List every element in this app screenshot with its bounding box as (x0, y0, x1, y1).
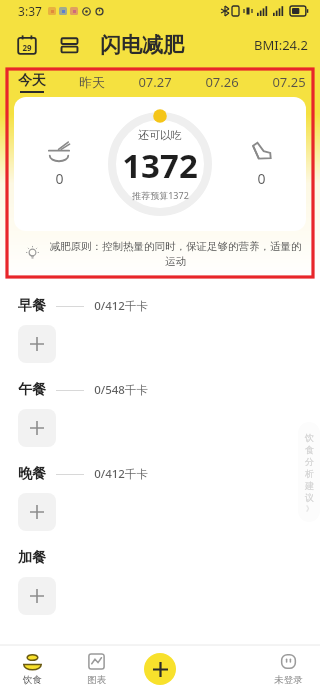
staticText: 0/412千卡 (94, 298, 148, 314)
staticText: 午餐 (18, 381, 46, 399)
button[interactable]: 还可以吃 (14, 97, 306, 231)
staticText: 饮 (305, 432, 314, 443)
staticText: 0/548千卡 (94, 382, 148, 398)
button[interactable]: 今天 (16, 72, 48, 93)
button[interactable]: 07.26 (203, 73, 241, 91)
staticText: 07.26 (205, 73, 239, 91)
staticText: 3:37 (18, 3, 42, 19)
staticText: 0/412千卡 (94, 466, 148, 482)
staticText: 》 (306, 504, 313, 513)
staticText: 图表 (87, 674, 106, 686)
button[interactable]: 昨天 (77, 74, 107, 90)
staticText: 未登录 (274, 674, 303, 686)
button[interactable]: Add 晚餐 (18, 493, 56, 531)
staticText: 还可以吃 (138, 128, 182, 142)
staticText: 加餐 (18, 549, 46, 567)
button[interactable]: Add 午餐 (18, 409, 56, 447)
staticText: 分 (305, 456, 314, 467)
button[interactable]: Add 早餐 (18, 325, 56, 363)
button[interactable]: 未登录 (256, 645, 320, 693)
button[interactable]: Add record (144, 653, 176, 685)
staticText: 0 (55, 169, 64, 188)
other: Exercise (250, 141, 272, 163)
staticText: 0 (257, 169, 266, 188)
button[interactable]: 图表 (64, 645, 128, 693)
staticText: 07.25 (272, 73, 306, 91)
button[interactable]: 07.27 (136, 73, 174, 91)
staticText: 推荐预算1372 (132, 189, 189, 201)
other: Tip (26, 247, 39, 260)
staticText: 闪电减肥 (100, 32, 184, 58)
button[interactable]: Food eaten (44, 137, 74, 192)
staticText: 早餐 (18, 297, 46, 315)
button[interactable]: Compare (56, 32, 82, 58)
staticText: 析 (305, 468, 314, 479)
button[interactable]: 饮食 (0, 645, 64, 693)
staticText: 今天 (18, 72, 46, 90)
staticText: 07.27 (138, 73, 172, 91)
staticText: 食 (305, 444, 314, 455)
staticText: 晚餐 (18, 465, 46, 483)
staticText: 饮食 (23, 674, 42, 686)
staticText: 1372 (122, 143, 198, 188)
button[interactable]: Tip (14, 240, 306, 266)
other: Food eaten (48, 141, 70, 163)
button[interactable]: Add 加餐 (18, 577, 56, 615)
staticText: 昨天 (79, 74, 105, 90)
button[interactable]: Exercise (246, 137, 276, 192)
staticText: 建 (305, 480, 314, 491)
button[interactable]: Calendar (14, 32, 40, 58)
button[interactable]: 07.25 (270, 73, 308, 91)
button[interactable]: 饮 (298, 422, 320, 522)
staticText: 29 (22, 42, 32, 53)
staticText: 议 (305, 492, 314, 503)
staticText: 减肥原则：控制热量的同时，保证足够的营养，适量的运动 (45, 240, 306, 266)
button[interactable]: BMI:24.2 (254, 36, 308, 54)
